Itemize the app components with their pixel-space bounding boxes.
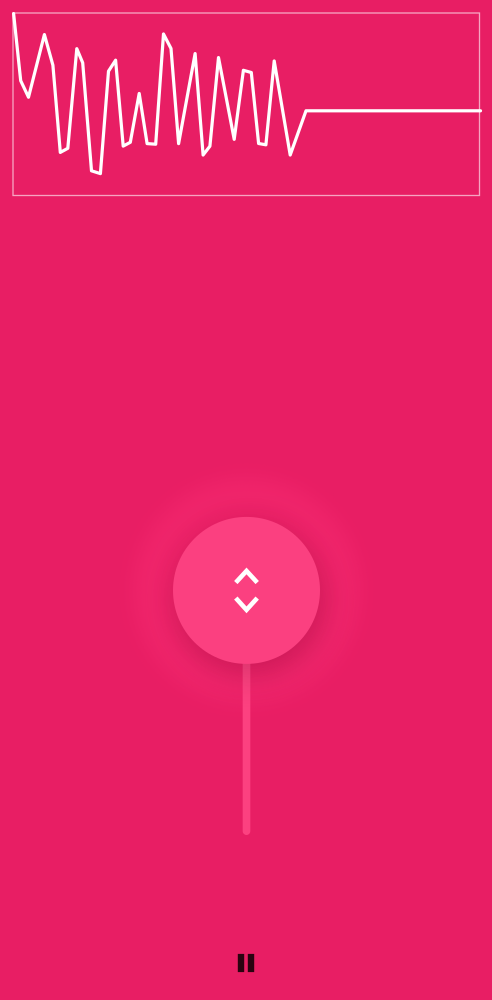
button[interactable]: Adjust xyxy=(173,517,320,664)
button[interactable]: Pause xyxy=(220,937,272,989)
